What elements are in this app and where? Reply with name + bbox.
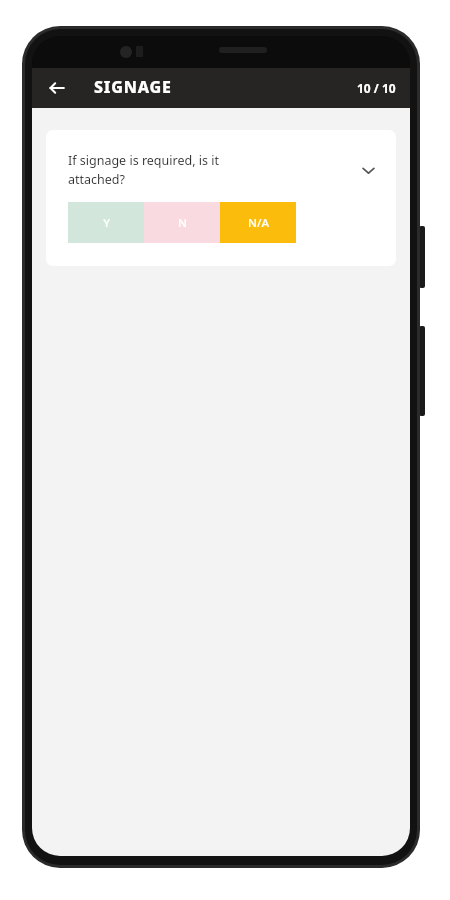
button[interactable]: N/A [220, 202, 296, 243]
staticText: SIGNAGE [94, 76, 172, 98]
staticText: If signage is required, is it attached? [68, 152, 354, 188]
button[interactable]: Y [68, 202, 144, 243]
button[interactable]: Expand [354, 156, 382, 184]
staticText: N [178, 215, 187, 231]
button[interactable]: Back [40, 71, 74, 105]
staticText: 10 / 10 [357, 80, 396, 96]
button[interactable]: N [144, 202, 220, 243]
button[interactable]: If signage is required, is it attached? [46, 130, 396, 266]
staticText: Y [103, 215, 110, 231]
staticText: N/A [248, 215, 269, 231]
